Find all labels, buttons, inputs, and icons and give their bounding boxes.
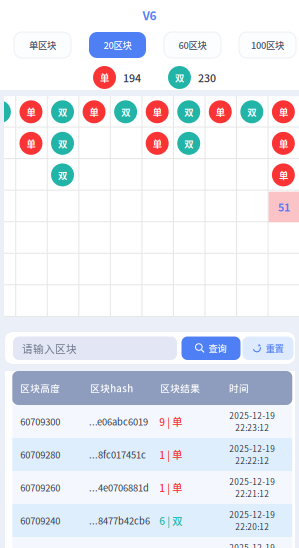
staticText: 2025-12-19 xyxy=(229,508,275,520)
button[interactable]: 查询 xyxy=(181,336,240,360)
staticText: 双 xyxy=(175,71,184,84)
staticText: ...8477b42cb6 xyxy=(89,514,150,527)
staticText: 51 xyxy=(278,199,290,215)
staticText: 单 xyxy=(26,137,35,150)
staticText: 60709280 xyxy=(20,448,60,461)
staticText: 单区块 xyxy=(29,38,56,52)
staticText: 单 xyxy=(216,105,225,118)
staticText: 230 xyxy=(198,70,216,85)
staticText: 6 | 双 xyxy=(159,513,182,528)
staticText: 双 xyxy=(184,137,193,150)
button[interactable]: 60区块 xyxy=(164,32,221,58)
staticText: 2025-12-19 xyxy=(229,541,275,548)
button[interactable]: 重置 xyxy=(242,336,293,360)
staticText: 2025-12-19 xyxy=(229,475,275,487)
staticText: 双 xyxy=(184,105,193,118)
staticText: 100区块 xyxy=(251,38,284,52)
staticText: 时间 xyxy=(229,381,249,395)
staticText: 双 xyxy=(58,168,67,182)
staticText: 22:22:12 xyxy=(235,454,269,466)
button[interactable]: 单区块 xyxy=(14,32,71,58)
staticText: V6 xyxy=(142,6,156,24)
staticText: 20区块 xyxy=(103,38,131,52)
staticText: 9 | 单 xyxy=(159,414,182,429)
staticText: 22:21:12 xyxy=(235,487,269,499)
staticText: 请输入区块 xyxy=(22,340,77,356)
button[interactable]: 100区块 xyxy=(239,32,296,58)
staticText: 60709260 xyxy=(20,481,60,494)
staticText: 22:23:12 xyxy=(235,421,269,433)
staticText: 双 xyxy=(121,105,130,118)
staticText: ...8fc017451c xyxy=(89,448,146,461)
staticText: 查询 xyxy=(208,341,226,355)
staticText: 双 xyxy=(58,137,67,150)
staticText: 单 xyxy=(279,105,288,118)
staticText: 60区块 xyxy=(178,38,206,52)
staticText: 单 xyxy=(26,105,35,118)
staticText: 194 xyxy=(123,70,141,85)
staticText: 单 xyxy=(153,105,162,118)
staticText: 区块hash xyxy=(90,381,133,395)
staticText: 单 xyxy=(153,137,162,150)
staticText: 60709240 xyxy=(20,514,60,527)
button[interactable]: 20区块 xyxy=(89,32,146,58)
staticText: 1 | 单 xyxy=(159,480,182,495)
staticText: 1 | 单 xyxy=(159,447,182,462)
staticText: 2025-12-19 xyxy=(229,442,275,454)
staticText: ...e06abc6019 xyxy=(89,415,148,428)
staticText: 单 xyxy=(100,71,109,84)
staticText: 双 xyxy=(58,105,67,118)
staticText: ...4e0706881d xyxy=(89,481,149,494)
staticText: 重置 xyxy=(266,341,284,355)
staticText: 单 xyxy=(279,137,288,150)
staticText: 区块结果 xyxy=(160,381,200,395)
staticText: 单 xyxy=(90,105,99,118)
staticText: 区块高度 xyxy=(20,381,60,395)
staticText: 双 xyxy=(247,105,256,118)
staticText: 单 xyxy=(279,168,288,182)
staticText: 60709300 xyxy=(20,415,60,428)
staticText: 22:20:12 xyxy=(235,520,269,532)
staticText: 2025-12-19 xyxy=(229,409,275,421)
